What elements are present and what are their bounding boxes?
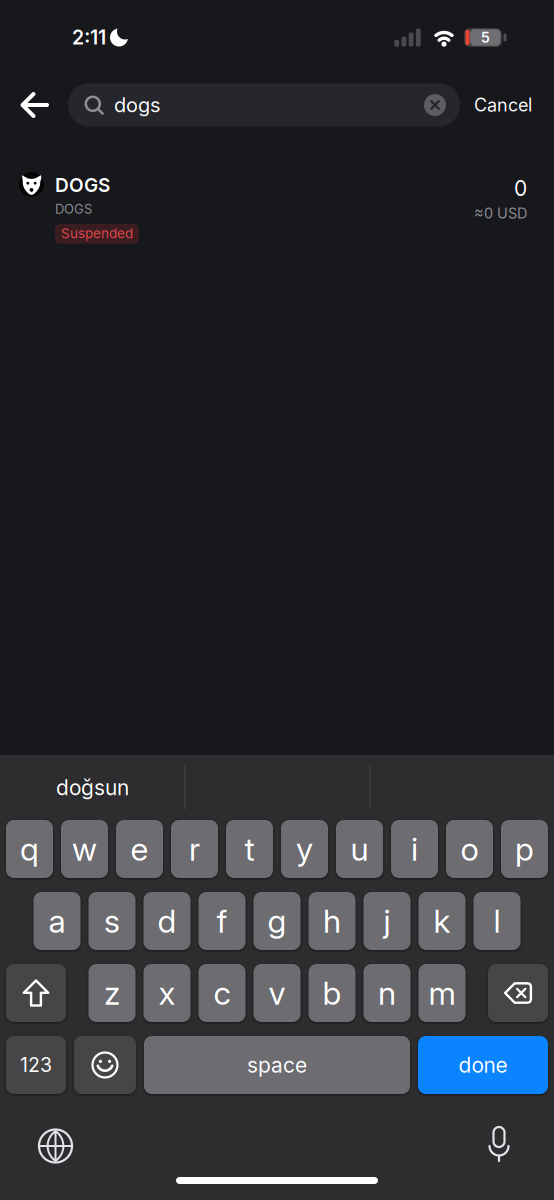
staticText: r [189,830,200,868]
button[interactable]: b [308,964,355,1022]
staticText: m [428,974,455,1012]
staticText: c [213,974,230,1012]
button[interactable]: Delete [488,964,548,1022]
button[interactable]: Clear text [424,94,460,116]
button[interactable]: s [88,892,135,950]
staticText: u [350,830,368,868]
button[interactable]: Next keyboard [39,1129,72,1162]
staticText: t [244,830,254,868]
button[interactable]: z [88,964,135,1022]
staticText: b [322,974,341,1012]
button[interactable]: DOGS [0,127,554,244]
staticText: DOGS [55,174,110,196]
button[interactable]: v [253,964,300,1022]
button[interactable]: k [418,892,465,950]
staticText: g [267,902,286,940]
staticText: o [460,830,478,868]
button[interactable]: Cancel [474,94,532,116]
staticText: 123 [20,1053,52,1076]
staticText: x [158,974,175,1012]
staticText: n [378,974,396,1012]
button[interactable]: e [116,820,163,878]
staticText: a [48,902,65,940]
button[interactable]: q [6,820,53,878]
button[interactable]: g [253,892,300,950]
staticText: y [296,830,313,868]
button[interactable]: w [61,820,108,878]
button[interactable]: Back [19,90,49,119]
button[interactable]: Dictate [487,1127,511,1165]
button[interactable]: o [446,820,493,878]
staticText: j [383,902,390,940]
staticText: w [72,830,97,868]
staticText: Suspended [61,225,133,241]
staticText: done [458,1053,507,1077]
button[interactable]: doğsun [0,755,184,820]
staticText: 2:11 [72,26,106,49]
staticText: doğsun [56,775,129,800]
button[interactable]: r [171,820,218,878]
staticText: q [20,830,39,868]
button[interactable]: m [418,964,465,1022]
staticText: d [157,902,176,940]
button[interactable]: i [391,820,438,878]
staticText: p [515,830,534,868]
staticText: 5 [481,29,490,46]
staticText: i [411,830,418,868]
staticText: e [130,830,148,868]
button[interactable]: f [198,892,245,950]
button[interactable]: j [363,892,410,950]
button[interactable]: 123 [6,1036,66,1094]
button[interactable]: y [281,820,328,878]
button[interactable]: space [144,1036,410,1094]
button[interactable]: x [143,964,190,1022]
staticText: v [268,974,285,1012]
button[interactable]: done [418,1036,548,1094]
button[interactable]: d [143,892,190,950]
staticText: ≈0 USD [474,205,527,222]
button[interactable]: Shift [6,964,66,1022]
staticText: z [104,974,120,1012]
button[interactable]: u [336,820,383,878]
staticText: l [493,902,500,940]
staticText: s [104,902,120,940]
staticText: 0 [514,176,527,201]
staticText: dogs [114,93,160,117]
button[interactable]: Emoji [74,1036,136,1094]
button[interactable]: l [473,892,520,950]
staticText: h [323,902,341,940]
button[interactable]: c [198,964,245,1022]
staticText: k [433,902,450,940]
staticText: space [247,1053,307,1077]
staticText: Cancel [474,94,532,116]
button[interactable]: n [363,964,410,1022]
button[interactable]: p [501,820,548,878]
button[interactable]: t [226,820,273,878]
button[interactable]: a [33,892,80,950]
button[interactable]: Search [68,83,460,126]
button[interactable]: h [308,892,355,950]
staticText: f [216,902,227,940]
staticText: DOGS [55,201,92,217]
